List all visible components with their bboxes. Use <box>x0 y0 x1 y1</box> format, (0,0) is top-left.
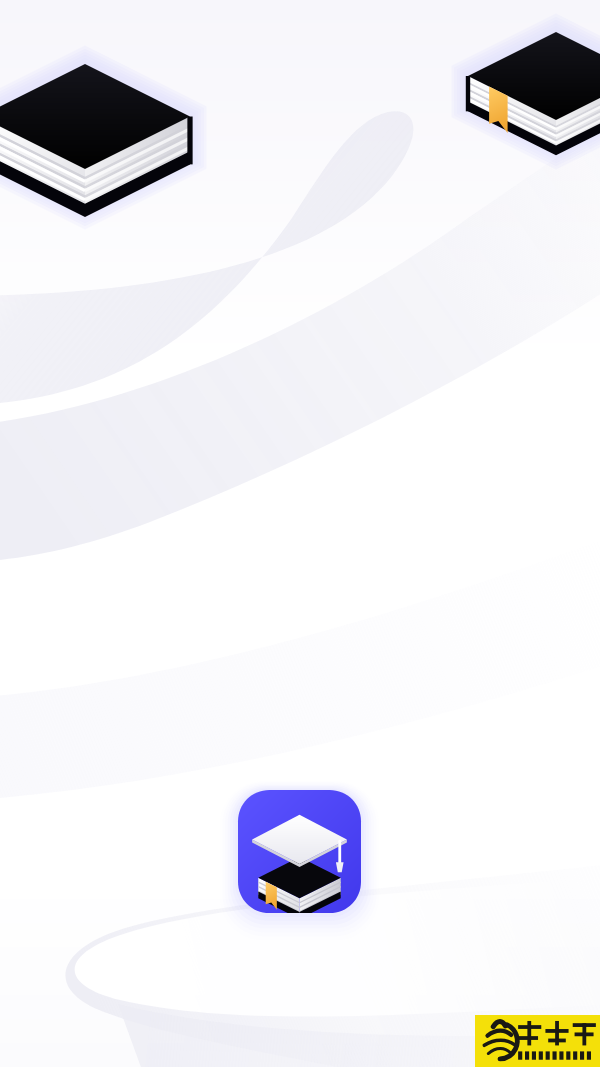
button[interactable]: Open app <box>0 0 600 1067</box>
